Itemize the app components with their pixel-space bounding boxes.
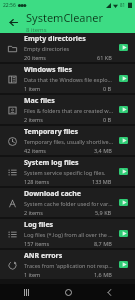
staticText: Empty directories xyxy=(24,34,86,44)
staticText: Files & folders that are created when br… xyxy=(24,107,114,114)
staticText: Mac files xyxy=(24,96,55,106)
staticText: System service specific log files. xyxy=(24,169,106,176)
button[interactable]: Mac files xyxy=(0,95,135,124)
staticText: Traces from 'application not responding'… xyxy=(24,262,114,269)
staticText: ANR errors xyxy=(24,251,63,261)
staticText: 157 items xyxy=(24,240,50,247)
staticText: 81 xyxy=(120,2,126,8)
button[interactable]: Delete Empty directories xyxy=(117,41,130,54)
staticText: Temporary files xyxy=(24,127,79,137)
staticText: 133 MB xyxy=(92,178,112,185)
staticText: Empty directories xyxy=(24,45,70,52)
button[interactable]: Back xyxy=(4,13,22,31)
staticText: 0 B xyxy=(103,116,112,123)
button[interactable]: Back xyxy=(94,284,124,300)
button[interactable]: Delete ANR errors xyxy=(117,258,130,271)
staticText: 20 items xyxy=(24,54,47,61)
staticText: 8 items xyxy=(26,26,47,33)
staticText: 0 B xyxy=(103,85,112,92)
staticText: Log files (*.log) from all over the devi… xyxy=(24,231,114,238)
staticText: Windows files xyxy=(24,65,72,75)
staticText: 128 items xyxy=(24,178,50,185)
staticText: 22:56 xyxy=(3,2,16,9)
button[interactable]: Delete System log files xyxy=(117,165,130,178)
button[interactable]: Recent apps xyxy=(11,284,41,300)
button[interactable]: Empty directories xyxy=(0,33,135,62)
button[interactable]: Delete Log files xyxy=(117,227,130,240)
button[interactable]: Temporary files xyxy=(0,126,135,155)
staticText: 1 item xyxy=(24,85,41,92)
button[interactable]: Download cache xyxy=(0,188,135,217)
staticText: 5,9 KB xyxy=(95,209,112,216)
staticText: System cache folder used for various thi… xyxy=(24,200,114,207)
staticText: Data that the Windows file explorer can … xyxy=(24,76,114,83)
staticText: 1 item xyxy=(24,271,41,278)
button[interactable]: ANR errors xyxy=(0,250,135,279)
staticText: 42 items xyxy=(24,147,47,154)
button[interactable]: Windows files xyxy=(0,64,135,93)
staticText: 1,6 MB xyxy=(94,271,112,278)
button[interactable]: Log files xyxy=(0,219,135,248)
button[interactable]: Home xyxy=(53,284,83,300)
staticText: System log files xyxy=(24,158,79,168)
staticText: 2 items xyxy=(24,209,43,216)
staticText: Download cache xyxy=(24,189,81,199)
button[interactable]: Delete Download cache xyxy=(117,196,130,209)
button[interactable]: Delete Temporary files xyxy=(117,134,130,147)
staticText: Log files xyxy=(24,220,54,230)
button[interactable]: Delete Mac files xyxy=(117,103,130,116)
staticText: 61 KB xyxy=(97,54,112,61)
staticText: Temporary files, usually shortlived cach… xyxy=(24,138,114,145)
button[interactable]: System log files xyxy=(0,157,135,186)
staticText: 3,4 MB xyxy=(94,147,112,154)
staticText: 8,7 MB xyxy=(94,240,112,247)
button[interactable]: Delete Windows files xyxy=(117,72,130,85)
staticText: 2 items xyxy=(24,116,43,123)
staticText: SystemCleaner xyxy=(26,10,104,25)
